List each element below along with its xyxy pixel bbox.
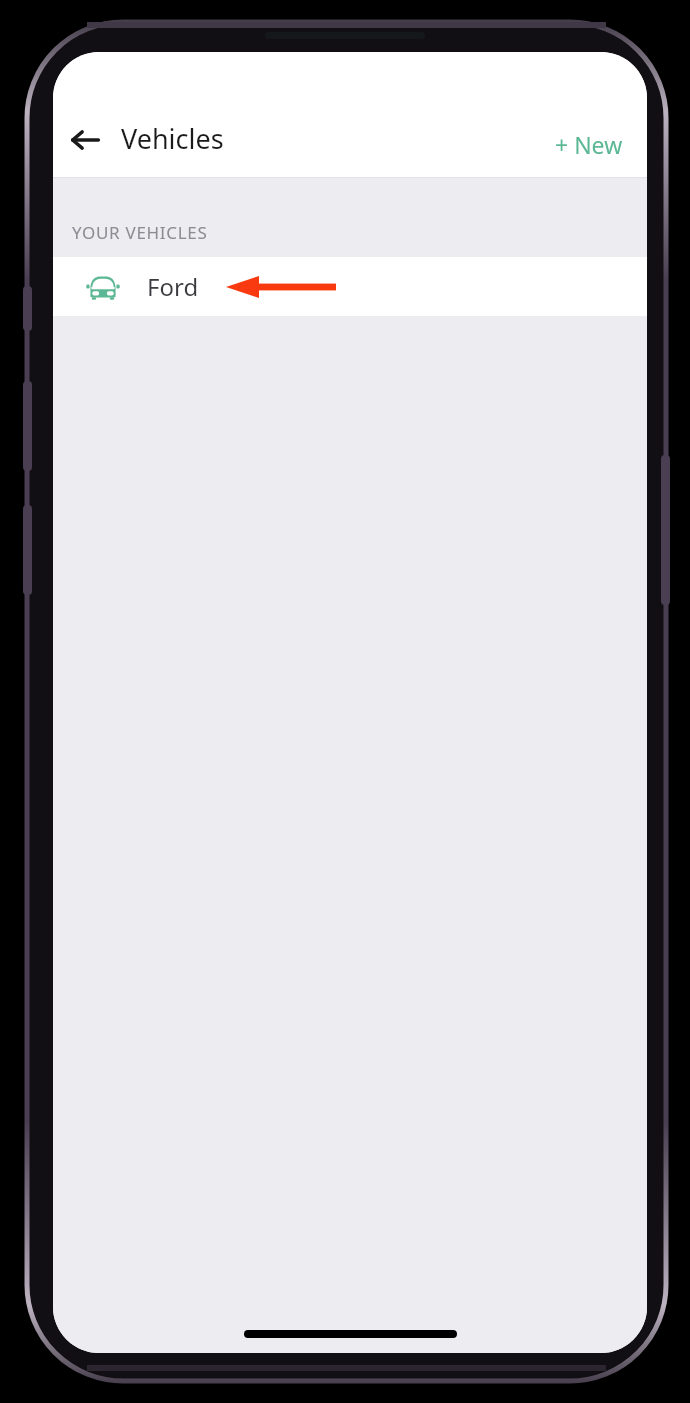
staticText: YOUR VEHICLES	[72, 221, 208, 244]
button[interactable]: Back	[59, 114, 111, 166]
staticText: Vehicles	[121, 120, 224, 157]
button[interactable]: + New	[545, 121, 633, 168]
staticText: + New	[555, 129, 623, 160]
staticText: Ford	[147, 270, 199, 303]
button[interactable]: Ford	[53, 257, 647, 316]
